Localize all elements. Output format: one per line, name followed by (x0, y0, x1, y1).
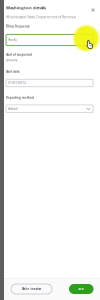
button[interactable]: 01/01/2012 (6, 79, 93, 87)
staticText: Accrual (8, 107, 18, 111)
staticText: 01/01/2012 (8, 81, 26, 85)
staticText: Washington details (6, 5, 46, 10)
staticText: January (6, 58, 17, 62)
staticText: Make inactive (21, 287, 41, 291)
staticText: Start of tax period (6, 53, 32, 56)
staticText: Yearly (8, 38, 16, 42)
button[interactable]: Close (90, 7, 96, 13)
staticText: Washington State Department of Revenue (6, 14, 76, 19)
button[interactable]: Accrual (6, 105, 93, 113)
button[interactable]: Save (69, 284, 93, 294)
staticText: Start date (6, 70, 20, 73)
staticText: Reporting method (6, 96, 34, 99)
staticText: Save (78, 287, 84, 291)
staticText: Filing frequency (6, 25, 29, 28)
button[interactable]: Yearly (6, 34, 93, 46)
button[interactable]: Make inactive (11, 284, 52, 294)
